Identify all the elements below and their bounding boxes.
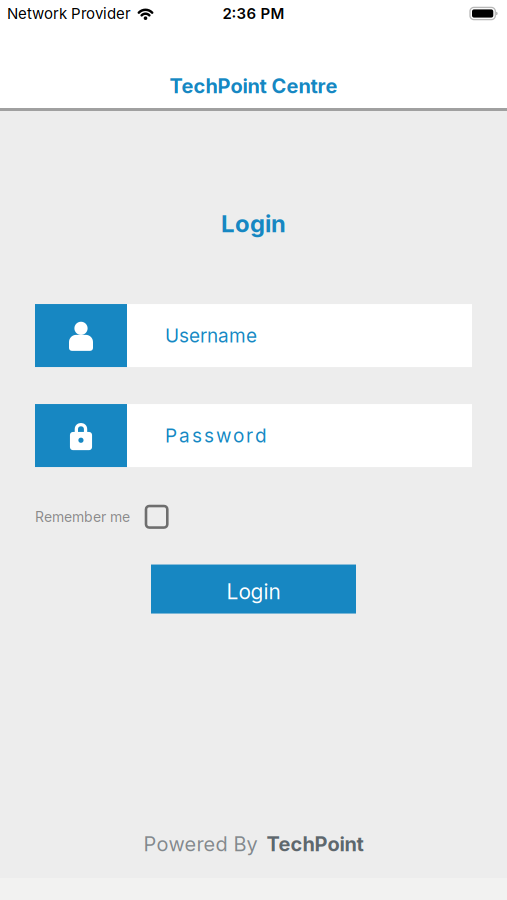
button[interactable]: Login (151, 564, 356, 613)
staticText: Password (165, 424, 267, 447)
button[interactable]: Remember me (146, 506, 167, 527)
staticText: Network Provider (7, 4, 131, 22)
staticText: Remember me (35, 508, 130, 525)
staticText: Username (165, 324, 257, 347)
staticText: TechPoint Centre (169, 74, 337, 98)
button[interactable]: Username (35, 304, 472, 367)
staticText: TechPoint (266, 832, 363, 856)
staticText: 2:36 PM (222, 4, 284, 22)
button[interactable]: Password (35, 404, 472, 467)
staticText: Login (221, 209, 286, 238)
staticText: Login (226, 579, 280, 604)
staticText: Powered By (143, 832, 257, 856)
